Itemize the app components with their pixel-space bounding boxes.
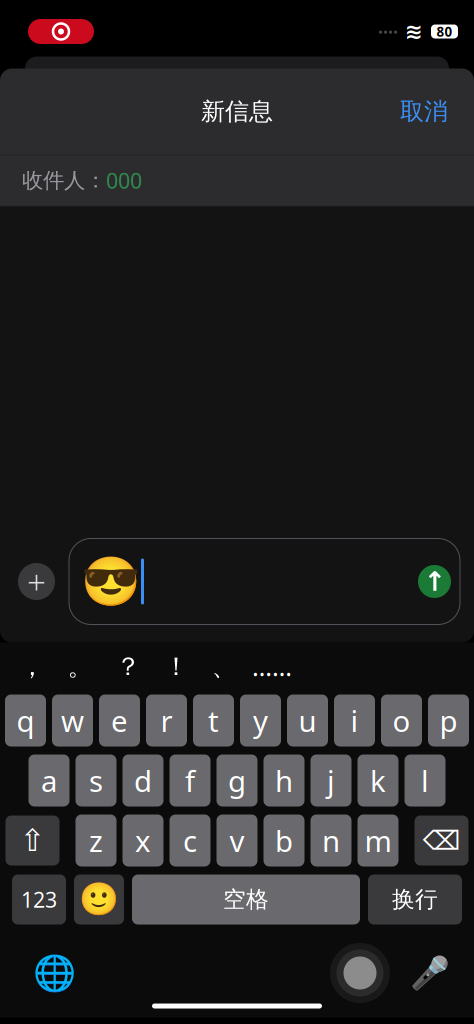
staticText: g: [228, 761, 246, 800]
staticText: 123: [21, 885, 57, 914]
staticText: 、: [211, 651, 236, 682]
button[interactable]: o: [381, 694, 422, 746]
button[interactable]: w: [52, 694, 93, 746]
button[interactable]: h: [263, 754, 304, 806]
staticText: 80: [436, 23, 452, 40]
staticText: k: [370, 761, 386, 800]
button[interactable]: Space: [132, 874, 360, 924]
staticText: 收件人：: [22, 167, 106, 194]
button[interactable]: Change keyboard: [32, 951, 76, 995]
staticText: ⇧: [19, 823, 45, 858]
button[interactable]: m: [357, 814, 398, 866]
staticText: n: [322, 821, 340, 860]
staticText: r: [160, 701, 172, 740]
button[interactable]: 取消: [384, 85, 464, 138]
staticText: ？: [115, 651, 140, 682]
button[interactable]: Send: [418, 565, 451, 598]
button[interactable]: Numbers: [12, 874, 66, 924]
button[interactable]: 、: [200, 644, 248, 688]
staticText: p: [439, 701, 457, 740]
staticText: w: [61, 701, 84, 740]
button[interactable]: f: [169, 754, 210, 806]
staticText: 空格: [223, 886, 269, 913]
button[interactable]: l: [404, 754, 445, 806]
button[interactable]: 。: [56, 644, 104, 688]
staticText: y: [253, 701, 268, 740]
staticText: ••••: [378, 23, 398, 40]
staticText: 🌐: [32, 953, 75, 993]
staticText: a: [41, 761, 57, 800]
button[interactable]: g: [216, 754, 257, 806]
button[interactable]: c: [169, 814, 210, 866]
staticText: o: [392, 701, 410, 740]
button[interactable]: s: [75, 754, 116, 806]
staticText: ……: [252, 650, 292, 683]
button[interactable]: t: [193, 694, 234, 746]
staticText: 🙂: [79, 881, 119, 918]
staticText: 🎤: [410, 955, 450, 991]
staticText: ≋: [405, 19, 423, 44]
staticText: ⌫: [422, 825, 460, 856]
staticText: 换行: [392, 886, 438, 913]
button[interactable]: q: [5, 694, 46, 746]
button[interactable]: ，: [8, 644, 56, 688]
button[interactable]: Return: [368, 874, 462, 924]
button[interactable]: d: [122, 754, 163, 806]
button[interactable]: k: [357, 754, 398, 806]
button[interactable]: u: [287, 694, 328, 746]
button[interactable]: e: [99, 694, 140, 746]
staticText: e: [111, 701, 128, 740]
staticText: ↑: [423, 566, 445, 597]
button[interactable]: i: [334, 694, 375, 746]
button[interactable]: AssistiveTouch: [330, 943, 390, 1003]
staticText: i: [350, 701, 358, 740]
staticText: q: [16, 701, 34, 740]
staticText: b: [275, 821, 293, 860]
button[interactable]: Shift: [5, 815, 59, 865]
staticText: 000: [106, 166, 142, 195]
button[interactable]: ……: [248, 644, 296, 688]
button[interactable]: 收件人：: [0, 155, 474, 205]
staticText: d: [134, 761, 152, 800]
button[interactable]: p: [428, 694, 469, 746]
staticText: c: [183, 821, 197, 860]
button[interactable]: Emoji: [74, 874, 124, 924]
staticText: 。: [67, 651, 92, 682]
staticText: ！: [163, 651, 188, 682]
button[interactable]: z: [75, 814, 116, 866]
staticText: x: [135, 821, 151, 860]
button[interactable]: a: [28, 754, 69, 806]
staticText: h: [275, 761, 293, 800]
staticText: j: [327, 761, 335, 800]
button[interactable]: y: [240, 694, 281, 746]
staticText: 😎: [81, 554, 141, 609]
button[interactable]: j: [310, 754, 351, 806]
button[interactable]: ！: [152, 644, 200, 688]
staticText: v: [229, 821, 244, 860]
staticText: s: [89, 761, 103, 800]
staticText: ，: [19, 651, 44, 682]
staticText: l: [421, 761, 429, 800]
button[interactable]: Dictate: [408, 951, 452, 995]
staticText: f: [185, 761, 195, 800]
button[interactable]: v: [216, 814, 257, 866]
staticText: +: [27, 559, 46, 604]
staticText: u: [298, 701, 316, 740]
staticText: 取消: [400, 97, 448, 126]
button[interactable]: r: [146, 694, 187, 746]
button[interactable]: ？: [104, 644, 152, 688]
staticText: z: [89, 821, 103, 860]
staticText: m: [364, 821, 391, 860]
button[interactable]: n: [310, 814, 351, 866]
button[interactable]: Delete: [414, 815, 468, 865]
button[interactable]: b: [263, 814, 304, 866]
button[interactable]: Add attachment: [18, 559, 55, 604]
staticText: 新信息: [201, 97, 273, 126]
button[interactable]: x: [122, 814, 163, 866]
staticText: t: [208, 701, 219, 740]
